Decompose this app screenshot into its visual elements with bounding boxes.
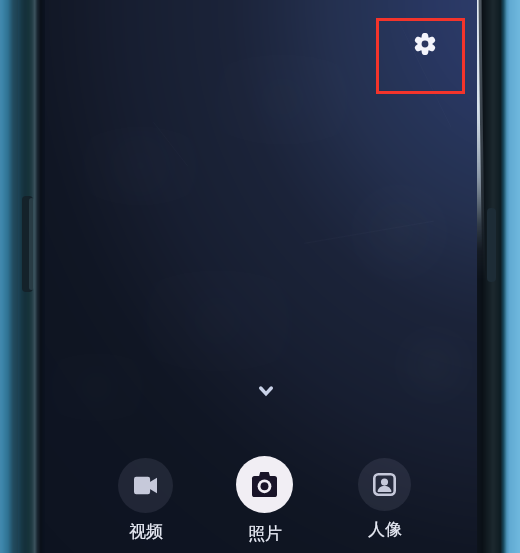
button[interactable]: 照片	[236, 456, 293, 544]
button[interactable]: 人像	[358, 458, 411, 540]
button[interactable]: Show more modes	[248, 373, 283, 408]
staticText: 人像	[368, 519, 402, 540]
button[interactable]: Settings	[403, 22, 446, 65]
button[interactable]: 视频	[118, 458, 173, 542]
staticText: 视频	[129, 521, 163, 542]
staticText: 照片	[248, 523, 282, 544]
